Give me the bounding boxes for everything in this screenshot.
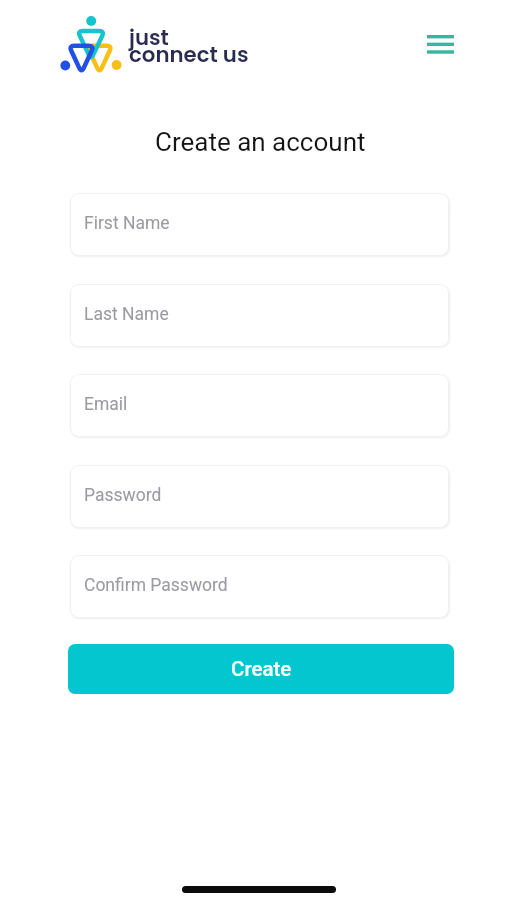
staticText: First Name bbox=[84, 213, 170, 234]
staticText: Email bbox=[84, 394, 128, 415]
button[interactable]: Password bbox=[70, 465, 449, 528]
staticText: Create bbox=[231, 657, 292, 681]
staticText: Password bbox=[84, 485, 162, 506]
staticText: just bbox=[129, 23, 169, 53]
button[interactable]: Last Name bbox=[70, 284, 449, 347]
button[interactable]: Email bbox=[70, 374, 449, 437]
staticText: Create an account bbox=[155, 127, 366, 157]
button[interactable]: Open navigation menu bbox=[411, 21, 469, 67]
button[interactable]: Confirm Password bbox=[70, 555, 449, 618]
button[interactable]: just bbox=[55, 12, 250, 74]
button[interactable]: Create bbox=[68, 644, 454, 694]
button[interactable]: First Name bbox=[70, 193, 449, 256]
staticText: Last Name bbox=[84, 304, 169, 325]
staticText: Confirm Password bbox=[84, 575, 228, 596]
staticText: connect us bbox=[129, 40, 249, 70]
